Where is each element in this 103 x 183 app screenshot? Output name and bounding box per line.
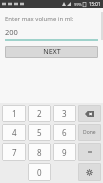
staticText: 15:01 — [89, 1, 101, 7]
button[interactable]: 3 — [53, 105, 76, 122]
button[interactable]: 9 — [53, 143, 76, 161]
staticText: 8 — [37, 147, 42, 158]
staticText: 3 — [62, 108, 67, 119]
button[interactable]: 6 — [53, 124, 76, 141]
button[interactable]: 4 — [2, 124, 26, 141]
button[interactable]: Minus — [78, 143, 101, 161]
staticText: 1 — [12, 108, 17, 119]
staticText: 99% — [74, 2, 82, 7]
button[interactable]: Done — [78, 124, 101, 141]
button[interactable]: 8 — [28, 143, 51, 161]
button[interactable]: NEXT — [5, 46, 98, 58]
button[interactable]: 200 — [5, 27, 98, 41]
staticText: Done — [83, 129, 96, 136]
button[interactable]: Backspace — [78, 105, 101, 122]
staticText: 200 — [5, 27, 18, 37]
staticText: 5 — [37, 127, 42, 138]
staticText: 4 — [12, 127, 17, 138]
button[interactable]: 1 — [2, 105, 26, 122]
staticText: 0 — [37, 167, 42, 178]
staticText: 9 — [62, 147, 67, 158]
staticText: NEXT — [43, 47, 61, 57]
button[interactable]: 7 — [2, 143, 26, 161]
staticText: 6 — [62, 127, 67, 138]
staticText: 2 — [37, 108, 42, 119]
staticText: 7 — [12, 147, 17, 158]
button[interactable]: 0 — [28, 163, 51, 181]
staticText: Enter max volume in ml: — [5, 15, 74, 23]
button[interactable]: Settings — [78, 163, 101, 181]
button[interactable]: 2 — [28, 105, 51, 122]
button[interactable]: 5 — [28, 124, 51, 141]
